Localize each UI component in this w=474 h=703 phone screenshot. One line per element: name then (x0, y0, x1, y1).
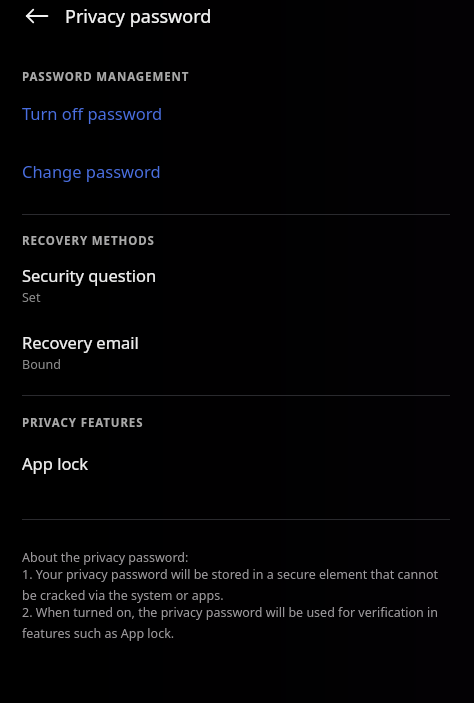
staticText: Set (22, 289, 41, 306)
staticText: 1. Your privacy password will be stored … (22, 566, 448, 604)
staticText: Change password (22, 160, 161, 182)
staticText: Recovery email (22, 331, 139, 353)
staticText: App lock (22, 452, 89, 474)
staticText: PASSWORD MANAGEMENT (22, 69, 190, 85)
staticText: Turn off password (22, 102, 163, 124)
button[interactable]: Change password (0, 154, 474, 188)
staticText: 2. When turned on, the privacy password … (22, 604, 448, 642)
staticText: Bound (22, 356, 61, 373)
button[interactable]: Turn off password (0, 96, 474, 130)
button[interactable]: App lock (0, 446, 474, 480)
button[interactable]: Security question (0, 260, 474, 309)
staticText: PRIVACY FEATURES (22, 415, 144, 431)
staticText: About the privacy password: (22, 549, 189, 566)
staticText: Security question (22, 264, 157, 286)
button[interactable]: Recovery email (0, 327, 474, 376)
staticText: Privacy password (65, 4, 212, 29)
staticText: RECOVERY METHODS (22, 233, 155, 249)
button[interactable]: Back (23, 2, 51, 30)
